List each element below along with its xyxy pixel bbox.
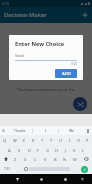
staticText: Q [3, 138, 7, 143]
staticText: I [69, 138, 71, 143]
button[interactable]: Enter [77, 165, 91, 173]
staticText: O [77, 138, 81, 143]
staticText: Decision Maker [4, 11, 47, 19]
button[interactable]: Emoji [22, 165, 29, 173]
button[interactable]: D [24, 146, 34, 154]
staticText: Thanks [14, 128, 26, 133]
button[interactable]: K [70, 146, 79, 154]
staticText: G [46, 148, 49, 153]
button[interactable]: Z [11, 155, 20, 163]
staticText: 6:13 [2, 1, 10, 6]
staticText: I [45, 128, 47, 133]
staticText: W [13, 138, 17, 143]
staticText: J [65, 148, 67, 153]
staticText: We [69, 128, 74, 133]
button[interactable]: E [20, 136, 29, 144]
button[interactable]: Settings [0, 126, 7, 135]
button[interactable]: U [56, 136, 65, 144]
button[interactable]: W [10, 136, 20, 144]
button[interactable]: G [43, 146, 52, 154]
button[interactable]: ADD [55, 69, 77, 78]
staticText: ?123 [4, 167, 11, 171]
button[interactable]: Back [13, 175, 21, 183]
button[interactable]: . [70, 165, 77, 173]
button[interactable]: N [60, 155, 70, 163]
staticText: V [44, 157, 47, 162]
staticText: Enter New Choice [15, 40, 65, 48]
button[interactable]: Shift [0, 155, 11, 163]
button[interactable]: X [20, 155, 30, 163]
button[interactable]: S [14, 146, 24, 154]
button[interactable]: F [34, 146, 43, 154]
button[interactable]: P [83, 136, 92, 144]
staticText: . [73, 167, 75, 172]
button[interactable]: Y [47, 136, 56, 144]
button[interactable]: Thanks [7, 126, 32, 135]
button[interactable]: R [29, 136, 38, 144]
staticText: H [55, 148, 58, 153]
button[interactable]: I [65, 136, 74, 144]
staticText: , [17, 167, 19, 172]
button[interactable]: L [79, 146, 88, 154]
button[interactable]: Recents [61, 175, 69, 183]
staticText: T [41, 138, 44, 143]
staticText: X [24, 157, 27, 162]
staticText: D [28, 148, 31, 153]
staticText: K [73, 148, 76, 153]
staticText: F [37, 148, 40, 153]
button[interactable]: ?123 [1, 165, 14, 173]
staticText: 0/20 [71, 62, 77, 66]
staticText: N [63, 157, 67, 162]
button[interactable]: B [50, 155, 60, 163]
button[interactable]: Menu [78, 175, 86, 183]
button[interactable]: H [52, 146, 61, 154]
staticText: Y [50, 138, 53, 143]
staticText: C [34, 157, 37, 162]
staticText: Steak [15, 53, 25, 58]
staticText: E [23, 138, 26, 143]
button[interactable]: T [38, 136, 47, 144]
staticText: Z [14, 157, 17, 162]
button[interactable]: I [33, 126, 58, 135]
button[interactable]: Home [37, 175, 45, 183]
staticText: A [8, 148, 11, 153]
button[interactable]: , [14, 165, 22, 173]
button[interactable]: M [70, 155, 80, 163]
staticText: M [73, 157, 77, 162]
staticText: R [32, 138, 35, 143]
button[interactable]: Add new choice [78, 8, 92, 22]
staticText: U [59, 138, 62, 143]
button[interactable]: C [30, 155, 40, 163]
button[interactable]: Shuffle choices [73, 97, 87, 111]
button[interactable]: Q [0, 136, 10, 144]
button[interactable]: Backspace [80, 155, 92, 163]
staticText: You have no items in your list [17, 87, 75, 93]
button[interactable]: A [4, 146, 14, 154]
button[interactable]: V [40, 155, 50, 163]
staticText: P [86, 138, 89, 143]
button[interactable]: J [61, 146, 70, 154]
button[interactable]: Voice input [84, 126, 92, 135]
staticText: ADD [62, 71, 71, 77]
button[interactable]: We [59, 126, 84, 135]
staticText: B [54, 157, 57, 162]
staticText: L [82, 148, 85, 153]
staticText: S [18, 148, 21, 153]
button[interactable]: O [74, 136, 83, 144]
